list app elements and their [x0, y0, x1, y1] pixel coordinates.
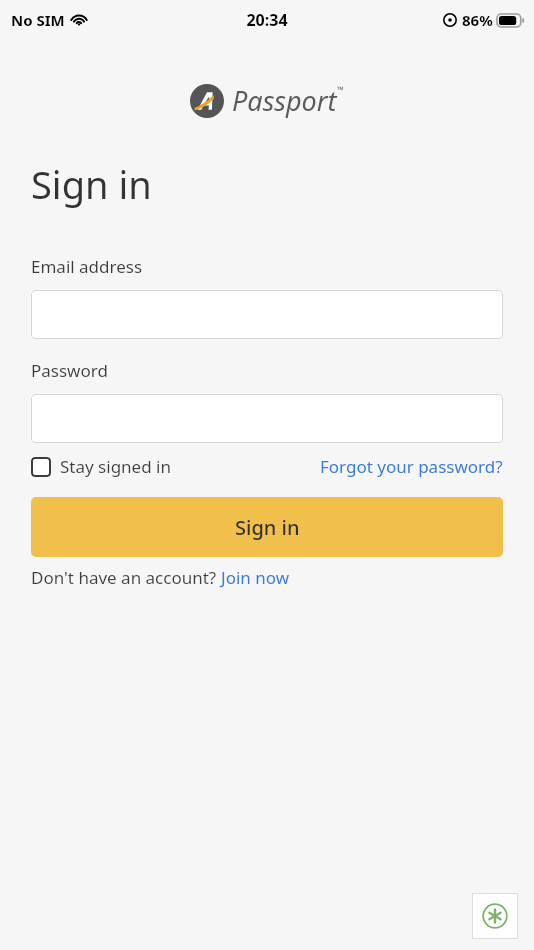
staticText: No SIM — [11, 10, 65, 30]
button[interactable] — [31, 394, 503, 443]
button[interactable]: Sign in — [31, 497, 503, 557]
staticText: Don't have an account? — [31, 566, 221, 589]
staticText: Stay signed in — [60, 455, 171, 478]
staticText: Passport — [232, 82, 337, 119]
staticText: ™ — [337, 83, 344, 95]
button[interactable]: Accessibility options — [472, 893, 518, 939]
staticText: Sign in — [235, 514, 300, 541]
staticText: Password — [31, 359, 108, 382]
staticText: Email address — [31, 255, 143, 278]
button[interactable]: Join now — [221, 566, 290, 589]
staticText: 86% — [462, 10, 493, 30]
staticText: 20:34 — [246, 9, 288, 31]
staticText: Sign in — [31, 158, 152, 210]
button[interactable] — [31, 290, 503, 339]
button[interactable]: Stay signed in — [31, 455, 171, 478]
button[interactable]: Forgot your password? — [320, 455, 503, 478]
